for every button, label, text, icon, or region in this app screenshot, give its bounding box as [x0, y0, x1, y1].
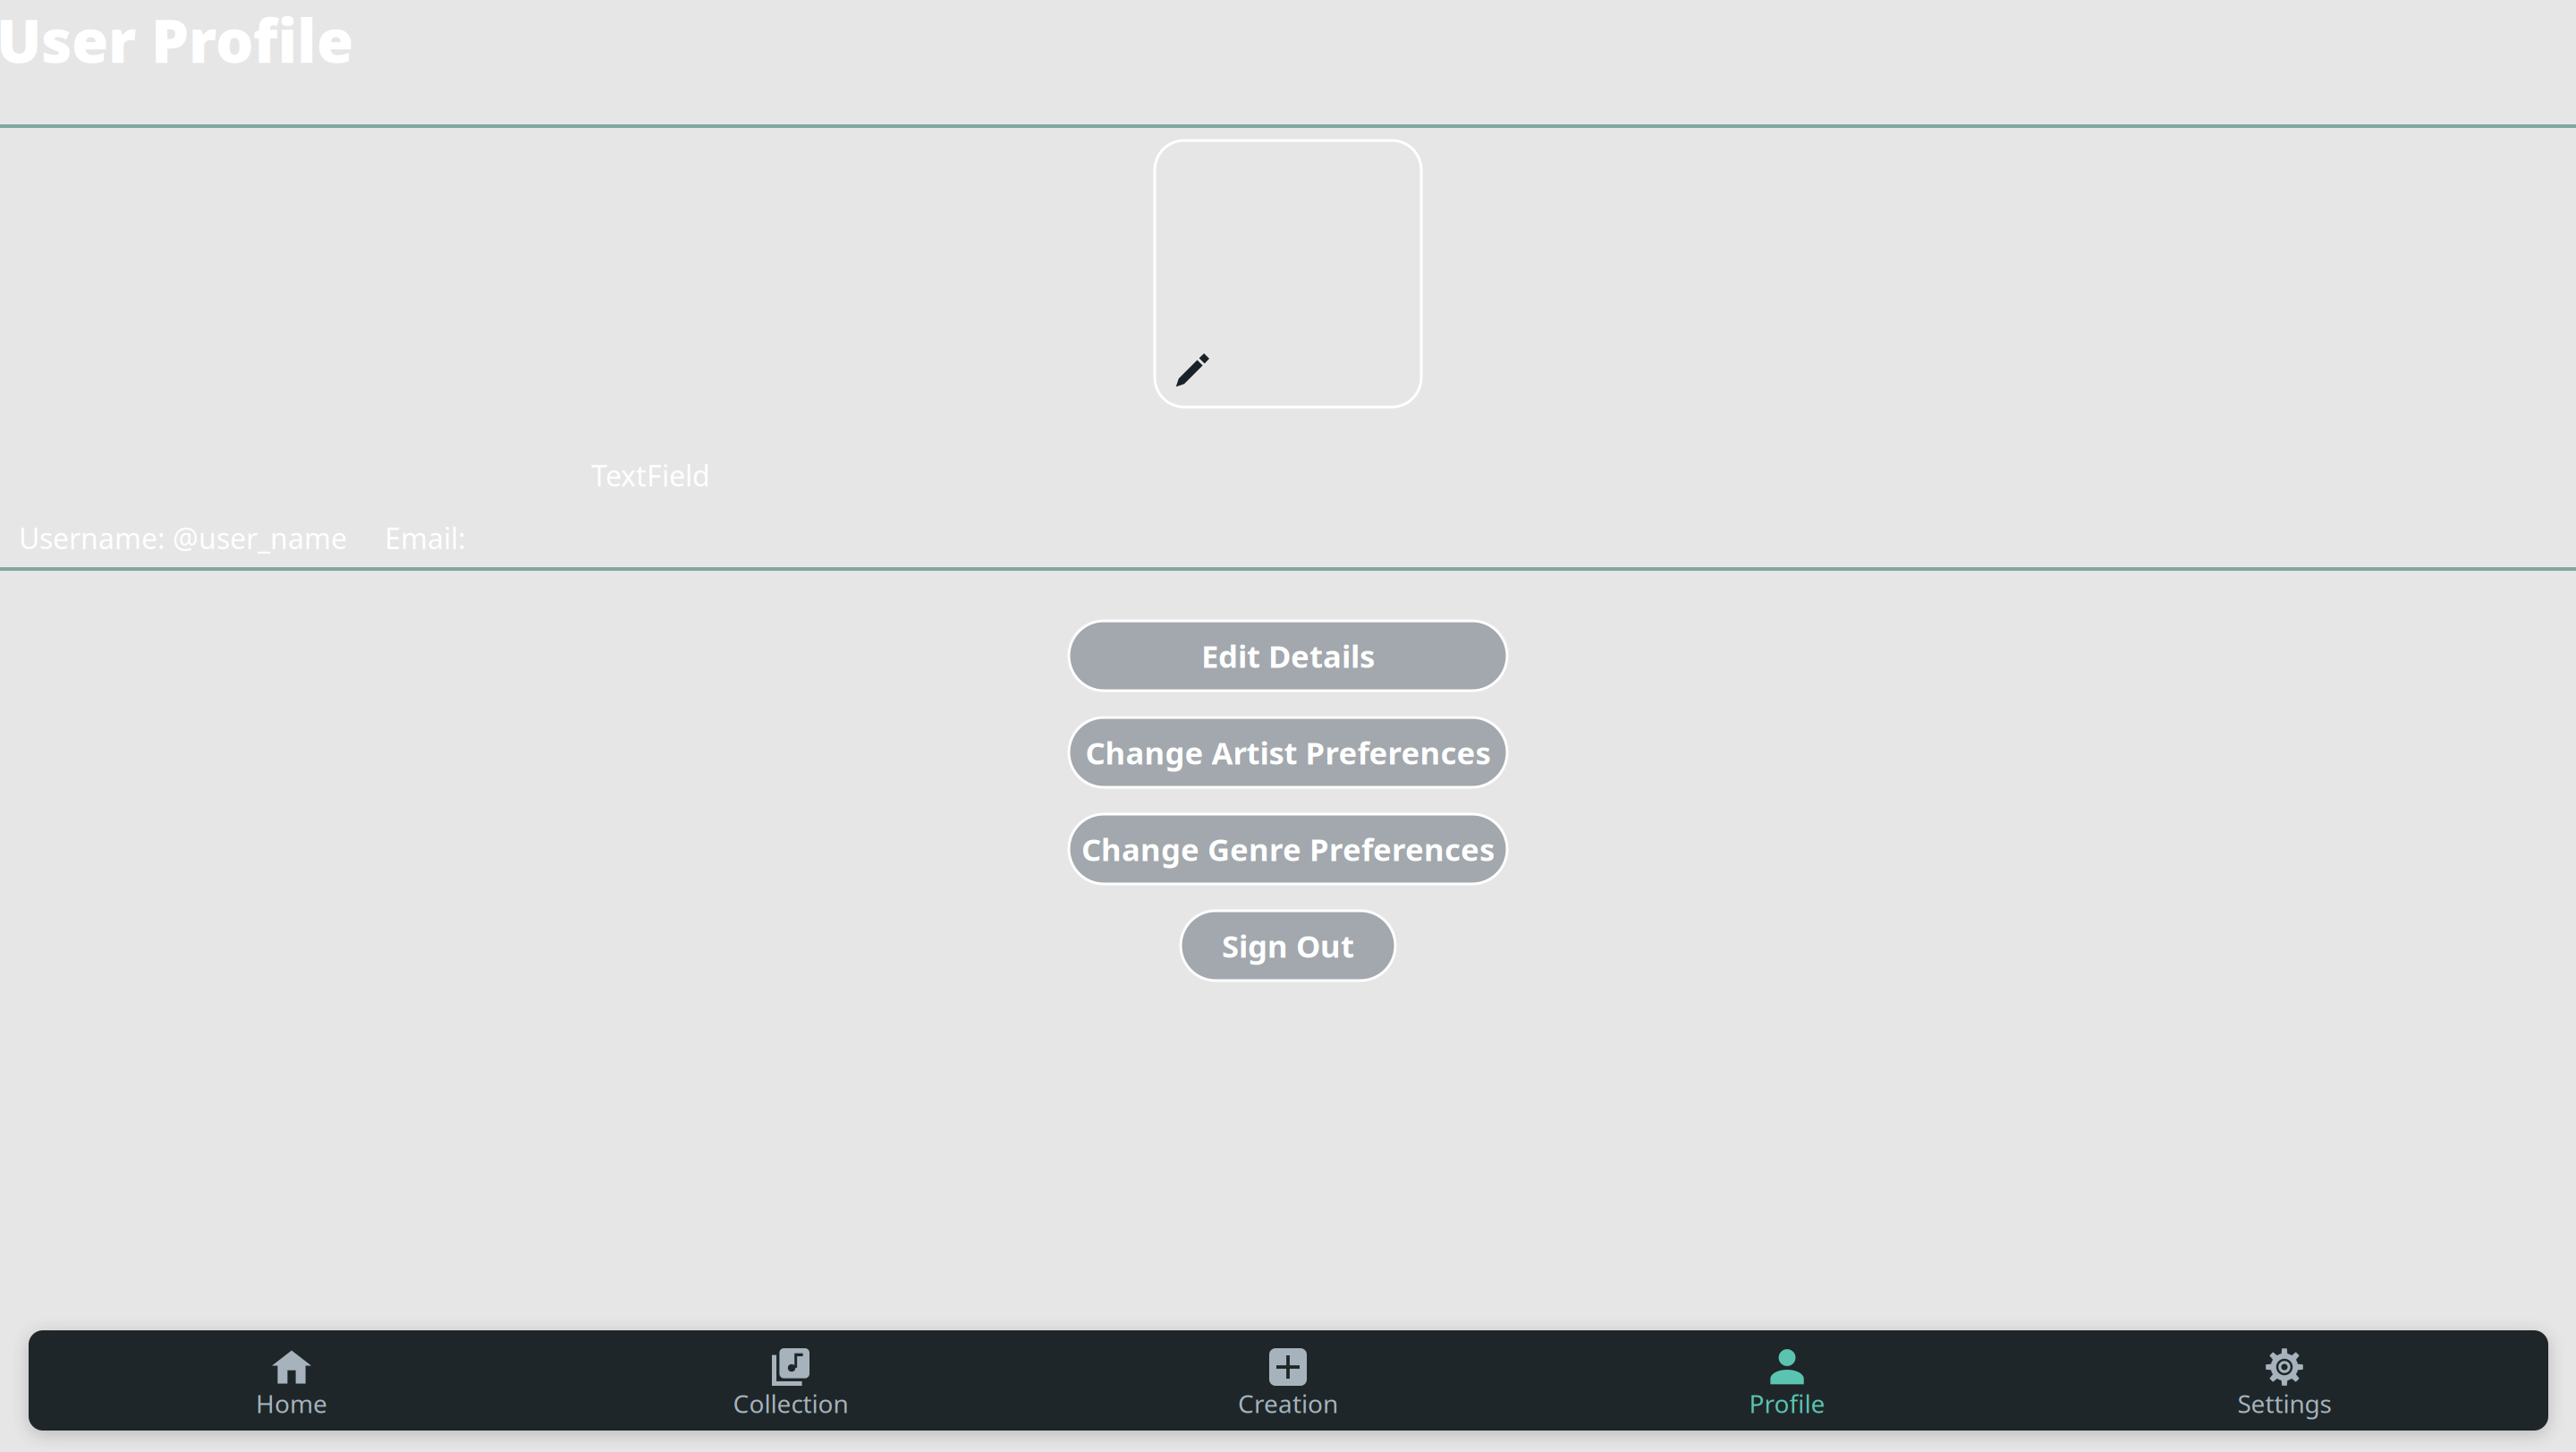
staticText: Username: @user_name: [19, 519, 347, 557]
staticText: Email:: [385, 519, 466, 557]
staticText: Change Artist Preferences: [1085, 732, 1491, 773]
button[interactable]: Change profile photo: [1155, 140, 1421, 407]
staticText: Collection: [733, 1387, 848, 1420]
button[interactable]: Collection: [539, 1330, 1043, 1431]
staticText: TextField: [591, 456, 710, 494]
staticText: Profile: [1749, 1387, 1825, 1420]
button[interactable]: Sign Out: [1181, 911, 1395, 981]
button[interactable]: Home: [40, 1330, 544, 1431]
button[interactable]: Edit Details: [1069, 621, 1507, 691]
button[interactable]: Settings: [2032, 1330, 2536, 1431]
staticText: Change Genre Preferences: [1081, 828, 1495, 870]
staticText: Settings: [2237, 1387, 2331, 1420]
staticText: Sign Out: [1222, 925, 1354, 966]
button[interactable]: Creation: [1036, 1330, 1540, 1431]
staticText: Creation: [1238, 1387, 1338, 1420]
staticText: Edit Details: [1201, 635, 1375, 676]
staticText: Home: [256, 1387, 327, 1420]
button[interactable]: Change Artist Preferences: [1069, 718, 1507, 787]
button[interactable]: Profile: [1535, 1330, 2039, 1431]
staticText: User Profile: [0, 0, 353, 79]
button[interactable]: Change Genre Preferences: [1069, 814, 1507, 884]
